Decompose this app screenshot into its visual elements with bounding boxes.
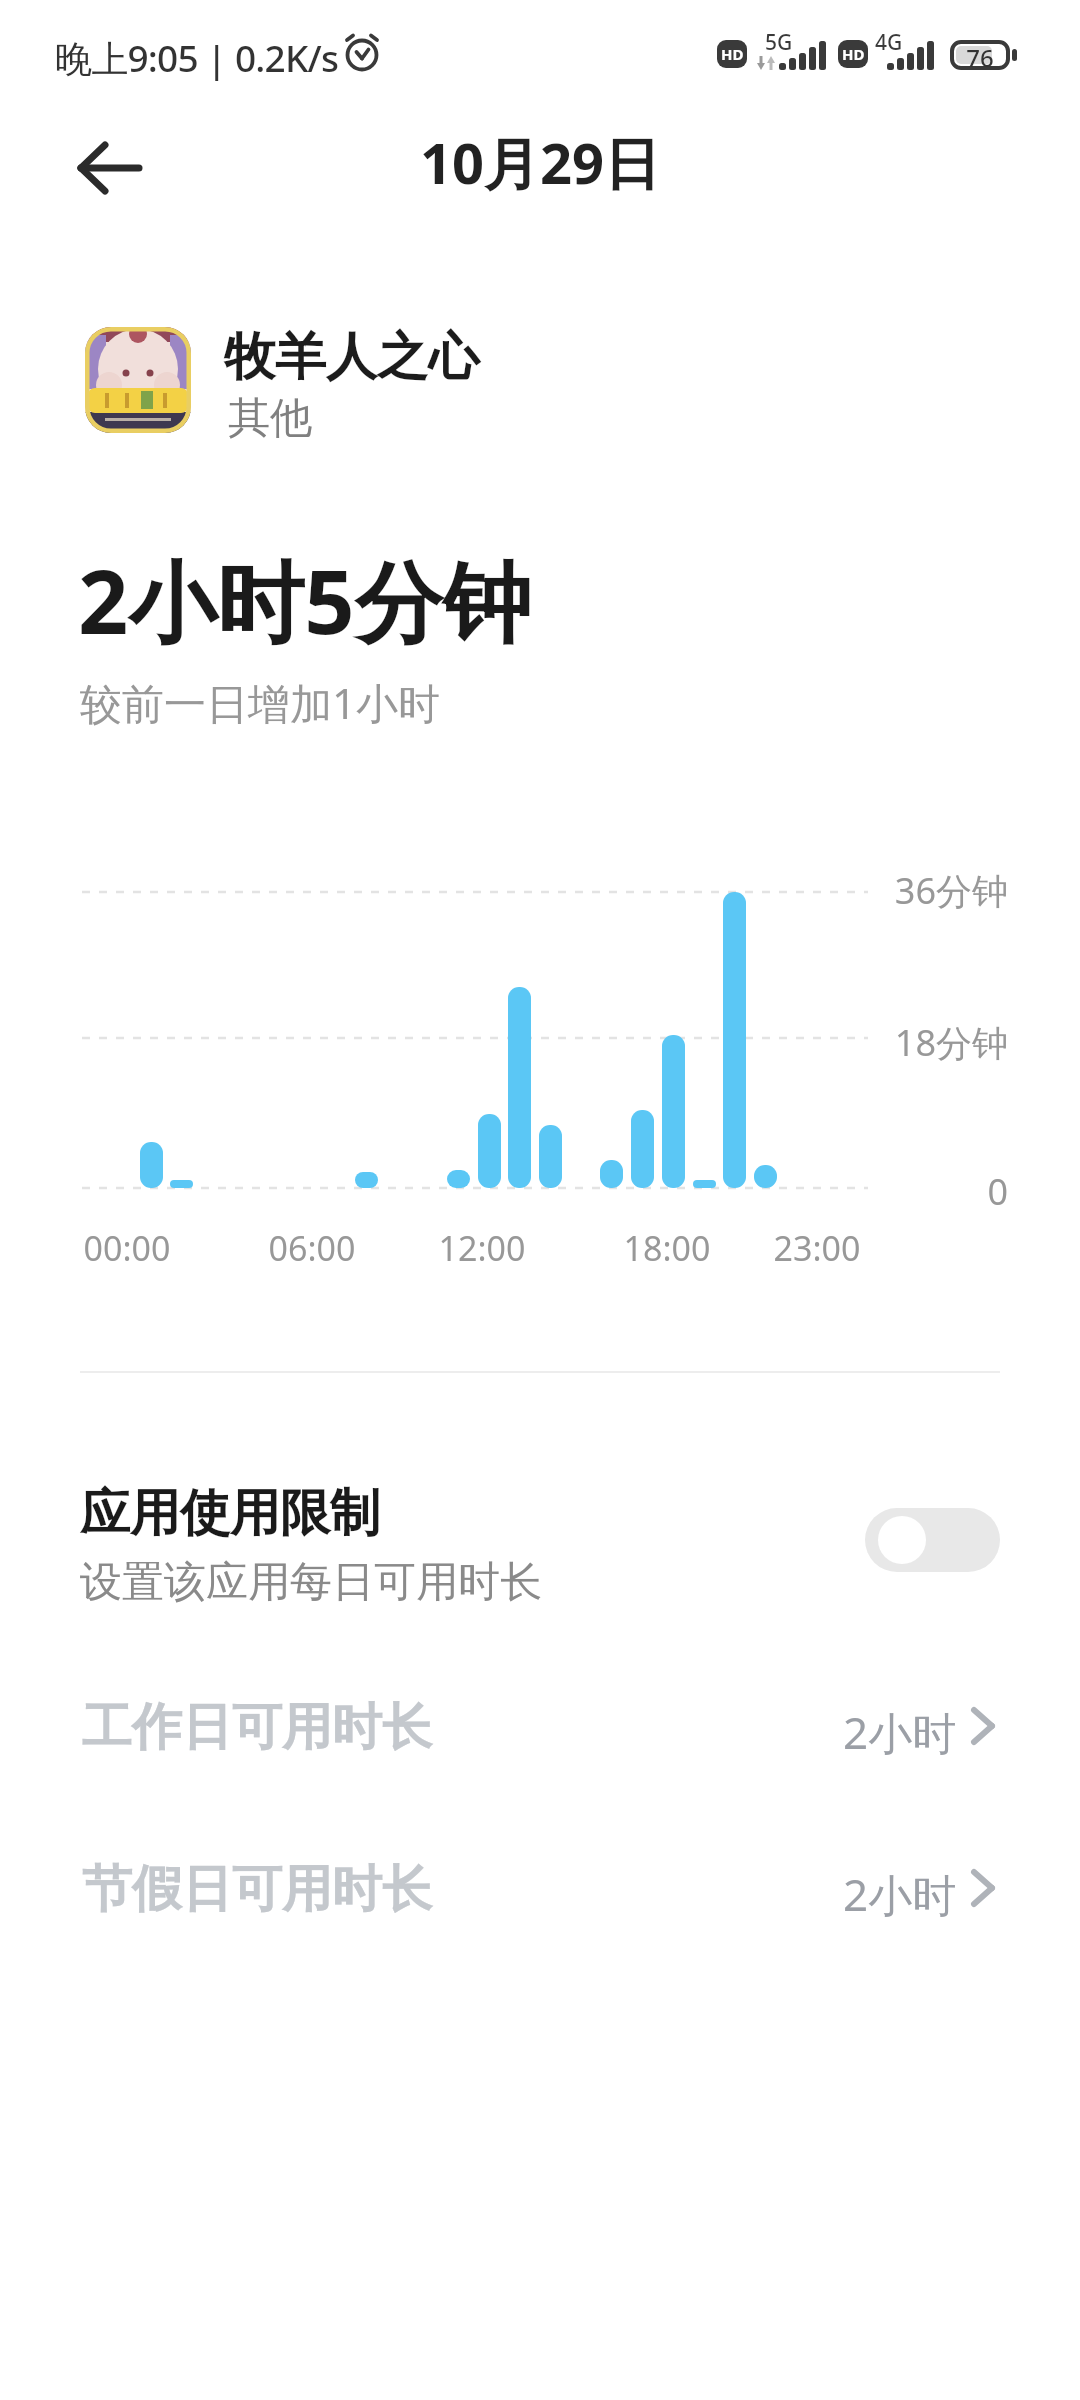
staticText: 36分钟: [858, 866, 1008, 915]
staticText: 较前一日增加1小时: [80, 674, 441, 731]
staticText: 18分钟: [858, 1018, 1008, 1067]
staticText: 00:00: [67, 1225, 187, 1271]
button[interactable]: [865, 1508, 1000, 1572]
staticText: 5G: [765, 28, 793, 57]
staticText: HD: [842, 44, 865, 64]
staticText: 76: [962, 41, 998, 74]
button[interactable]: [60, 125, 160, 210]
staticText: 10月29日: [0, 124, 1080, 200]
staticText: 牧羊人之心: [224, 325, 479, 389]
staticText: 06:00: [252, 1225, 372, 1271]
button[interactable]: [60, 310, 660, 460]
button[interactable]: [40, 1670, 1040, 1790]
button[interactable]: [40, 1832, 1040, 1952]
staticText: 18:00: [607, 1225, 727, 1271]
staticText: 2小时5分钟: [78, 540, 531, 660]
staticText: HD: [721, 44, 744, 64]
button[interactable]: [40, 1470, 1040, 1630]
staticText: 0: [858, 1167, 1008, 1216]
staticText: 其他: [228, 392, 312, 445]
staticText: 应用使用限制: [80, 1482, 380, 1545]
staticText: 节假日可用时长: [82, 1858, 432, 1921]
staticText: 12:00: [422, 1225, 542, 1271]
staticText: 2小时: [843, 1702, 957, 1762]
staticText: 晚上9:05 | 0.2K/s: [55, 32, 339, 83]
staticText: 2小时: [843, 1864, 957, 1924]
staticText: 23:00: [757, 1225, 877, 1271]
staticText: 工作日可用时长: [82, 1696, 432, 1759]
staticText: 设置该应用每日可用时长: [80, 1556, 542, 1609]
staticText: 4G: [875, 28, 903, 57]
